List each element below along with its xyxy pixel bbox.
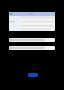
- button[interactable]: [9, 38, 55, 42]
- button[interactable]: Primary action: [28, 73, 38, 77]
- button[interactable]: [9, 46, 55, 50]
- button[interactable]: [9, 12, 55, 31]
